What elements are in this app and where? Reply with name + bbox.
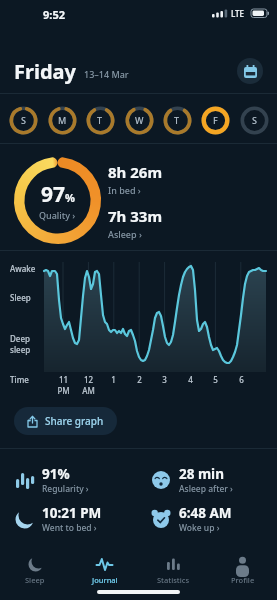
- button[interactable]: [237, 58, 263, 84]
- staticText: 91%: [42, 465, 70, 483]
- button[interactable]: S: [8, 105, 38, 135]
- staticText: Woke up ›: [179, 522, 220, 534]
- staticText: F: [213, 114, 218, 126]
- staticText: Journal: [92, 575, 118, 585]
- button[interactable]: M: [47, 105, 77, 135]
- staticText: Sleep: [25, 575, 45, 585]
- button[interactable]: S: [239, 105, 269, 135]
- staticText: Awake: [10, 263, 36, 274]
- staticText: 12 AM: [82, 374, 95, 396]
- button[interactable]: Statistics: [139, 556, 208, 585]
- button[interactable]: 91%: [13, 465, 89, 495]
- staticText: 3: [162, 374, 167, 385]
- button[interactable]: 28 min: [150, 465, 233, 495]
- button[interactable]: Sleep: [0, 556, 70, 585]
- button[interactable]: 10:21 PM: [13, 504, 102, 534]
- button[interactable]: F: [200, 105, 230, 135]
- staticText: Quality ›: [39, 209, 76, 221]
- staticText: 6: [239, 374, 244, 385]
- staticText: Friday: [14, 58, 76, 85]
- staticText: 97%: [41, 180, 75, 209]
- staticText: Regularity ›: [42, 483, 89, 495]
- staticText: Time: [10, 374, 29, 385]
- staticText: 4: [188, 374, 193, 385]
- staticText: 9:52: [43, 7, 65, 22]
- staticText: Went to bed ›: [42, 522, 97, 534]
- staticText: LTE: [231, 8, 245, 19]
- staticText: S: [252, 114, 257, 126]
- button[interactable]: T: [162, 105, 192, 135]
- staticText: 11 PM: [57, 374, 70, 396]
- staticText: Asleep after ›: [179, 483, 233, 495]
- button[interactable]: Profile: [208, 556, 277, 585]
- staticText: 2: [137, 374, 142, 385]
- staticText: 28 min: [179, 465, 224, 483]
- button[interactable]: Journal: [70, 556, 139, 585]
- button[interactable]: 97%: [39, 180, 76, 221]
- staticText: Statistics: [157, 575, 190, 585]
- staticText: Sleep: [10, 292, 31, 303]
- button[interactable]: Share graph: [14, 407, 117, 435]
- button[interactable]: T: [85, 105, 115, 135]
- staticText: 5: [213, 374, 218, 385]
- button[interactable]: W: [124, 105, 154, 135]
- staticText: T: [174, 114, 180, 126]
- button[interactable]: 8h 26m: [108, 162, 163, 240]
- staticText: 13–14 Mar: [84, 68, 129, 80]
- staticText: In bed ›: [108, 184, 141, 196]
- staticText: 10:21 PM: [42, 504, 102, 522]
- staticText: Deep sleep: [10, 333, 31, 355]
- staticText: 1: [111, 374, 116, 385]
- staticText: 7h 33m: [108, 206, 163, 226]
- staticText: 8h 26m: [108, 162, 163, 182]
- staticText: T: [97, 114, 103, 126]
- staticText: M: [58, 114, 67, 126]
- staticText: S: [21, 114, 26, 126]
- staticText: 6:48 AM: [179, 504, 232, 522]
- staticText: Share graph: [45, 414, 104, 428]
- staticText: Asleep ›: [108, 228, 142, 240]
- staticText: Profile: [231, 575, 255, 585]
- staticText: W: [135, 114, 144, 126]
- button[interactable]: 6:48 AM: [150, 504, 232, 534]
